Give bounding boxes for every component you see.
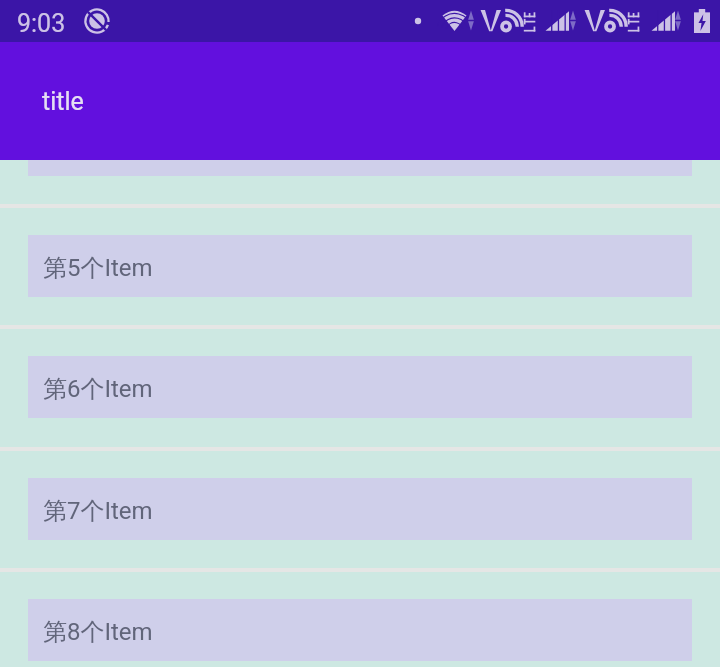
staticText: 9:03 [17, 9, 66, 38]
button[interactable]: 第7个Item [0, 447, 720, 568]
button[interactable]: 第8个Item [0, 568, 720, 667]
staticText: 第6个Item [43, 374, 153, 404]
button[interactable]: 第4个Item [0, 83, 720, 204]
staticText: title [42, 87, 84, 116]
staticText: 第5个Item [43, 253, 153, 283]
staticText: 第4个Item [43, 132, 153, 162]
staticText: 第8个Item [43, 617, 153, 647]
button[interactable]: 第5个Item [0, 204, 720, 325]
staticText: 第7个Item [43, 496, 153, 526]
button[interactable]: 第6个Item [0, 325, 720, 446]
